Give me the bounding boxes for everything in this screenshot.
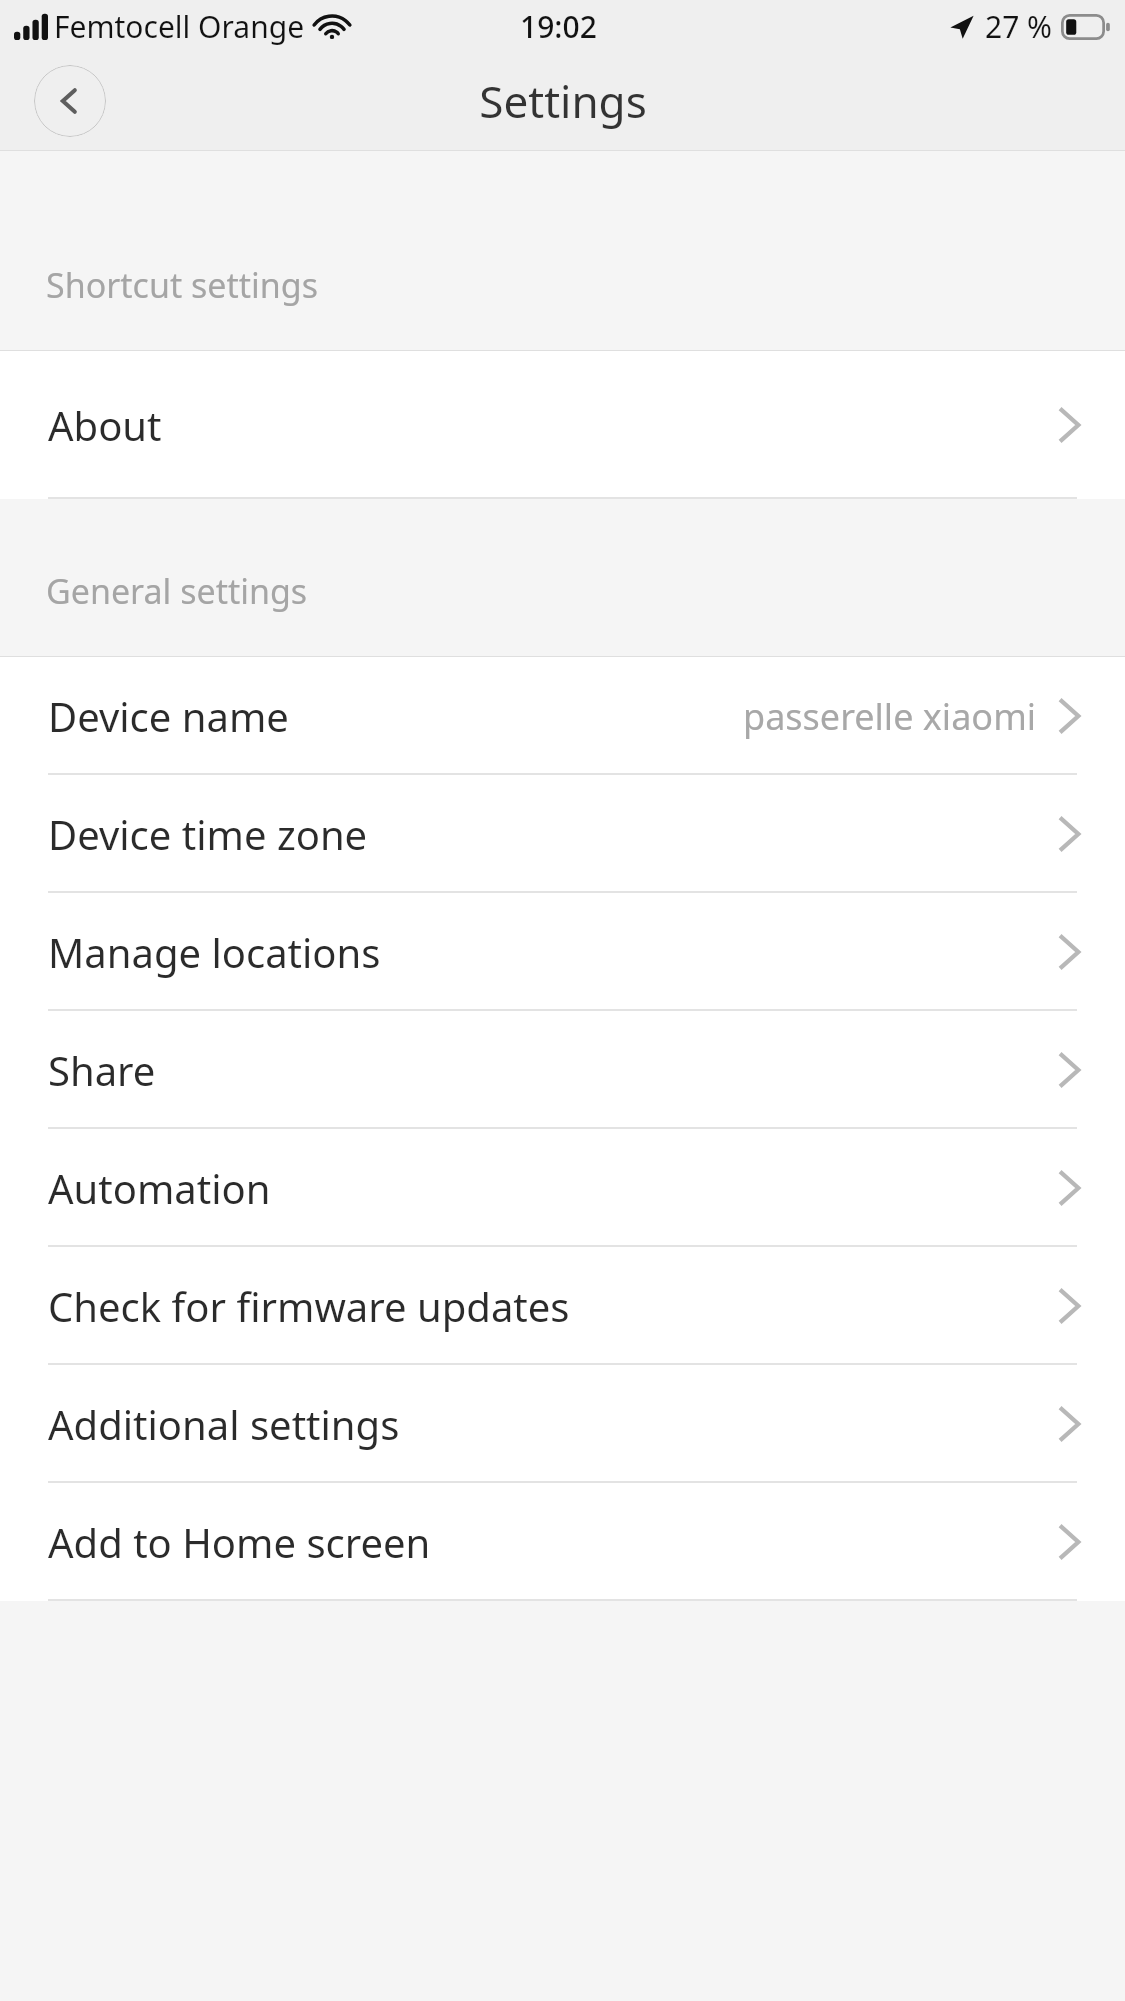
button[interactable]: Automation	[0, 1129, 1125, 1247]
staticText: Device time zone	[48, 807, 368, 861]
staticText: Add to Home screen	[48, 1515, 431, 1569]
staticText: Share	[48, 1043, 156, 1097]
button[interactable]: Share	[0, 1011, 1125, 1129]
staticText: Manage locations	[48, 925, 381, 979]
staticText: About	[48, 398, 162, 452]
staticText: Shortcut settings	[46, 262, 318, 308]
button[interactable]: Device name	[0, 657, 1125, 775]
button[interactable]: About	[0, 351, 1125, 499]
staticText: Additional settings	[48, 1397, 400, 1451]
button[interactable]: Add to Home screen	[0, 1483, 1125, 1601]
staticText: 19:02	[520, 6, 597, 47]
staticText: Check for firmware updates	[48, 1279, 570, 1333]
staticText: Femtocell Orange	[54, 6, 305, 47]
button[interactable]: Additional settings	[0, 1365, 1125, 1483]
staticText: General settings	[46, 568, 308, 614]
button[interactable]: Check for firmware updates	[0, 1247, 1125, 1365]
staticText: Device name	[48, 689, 289, 743]
staticText: Automation	[48, 1161, 271, 1215]
staticText: 27 %	[985, 6, 1053, 47]
staticText: passerelle xiaomi	[743, 692, 1037, 741]
button[interactable]: Manage locations	[0, 893, 1125, 1011]
button[interactable]: Device time zone	[0, 775, 1125, 893]
staticText: Settings	[479, 71, 647, 131]
button[interactable]: Back	[34, 65, 106, 137]
